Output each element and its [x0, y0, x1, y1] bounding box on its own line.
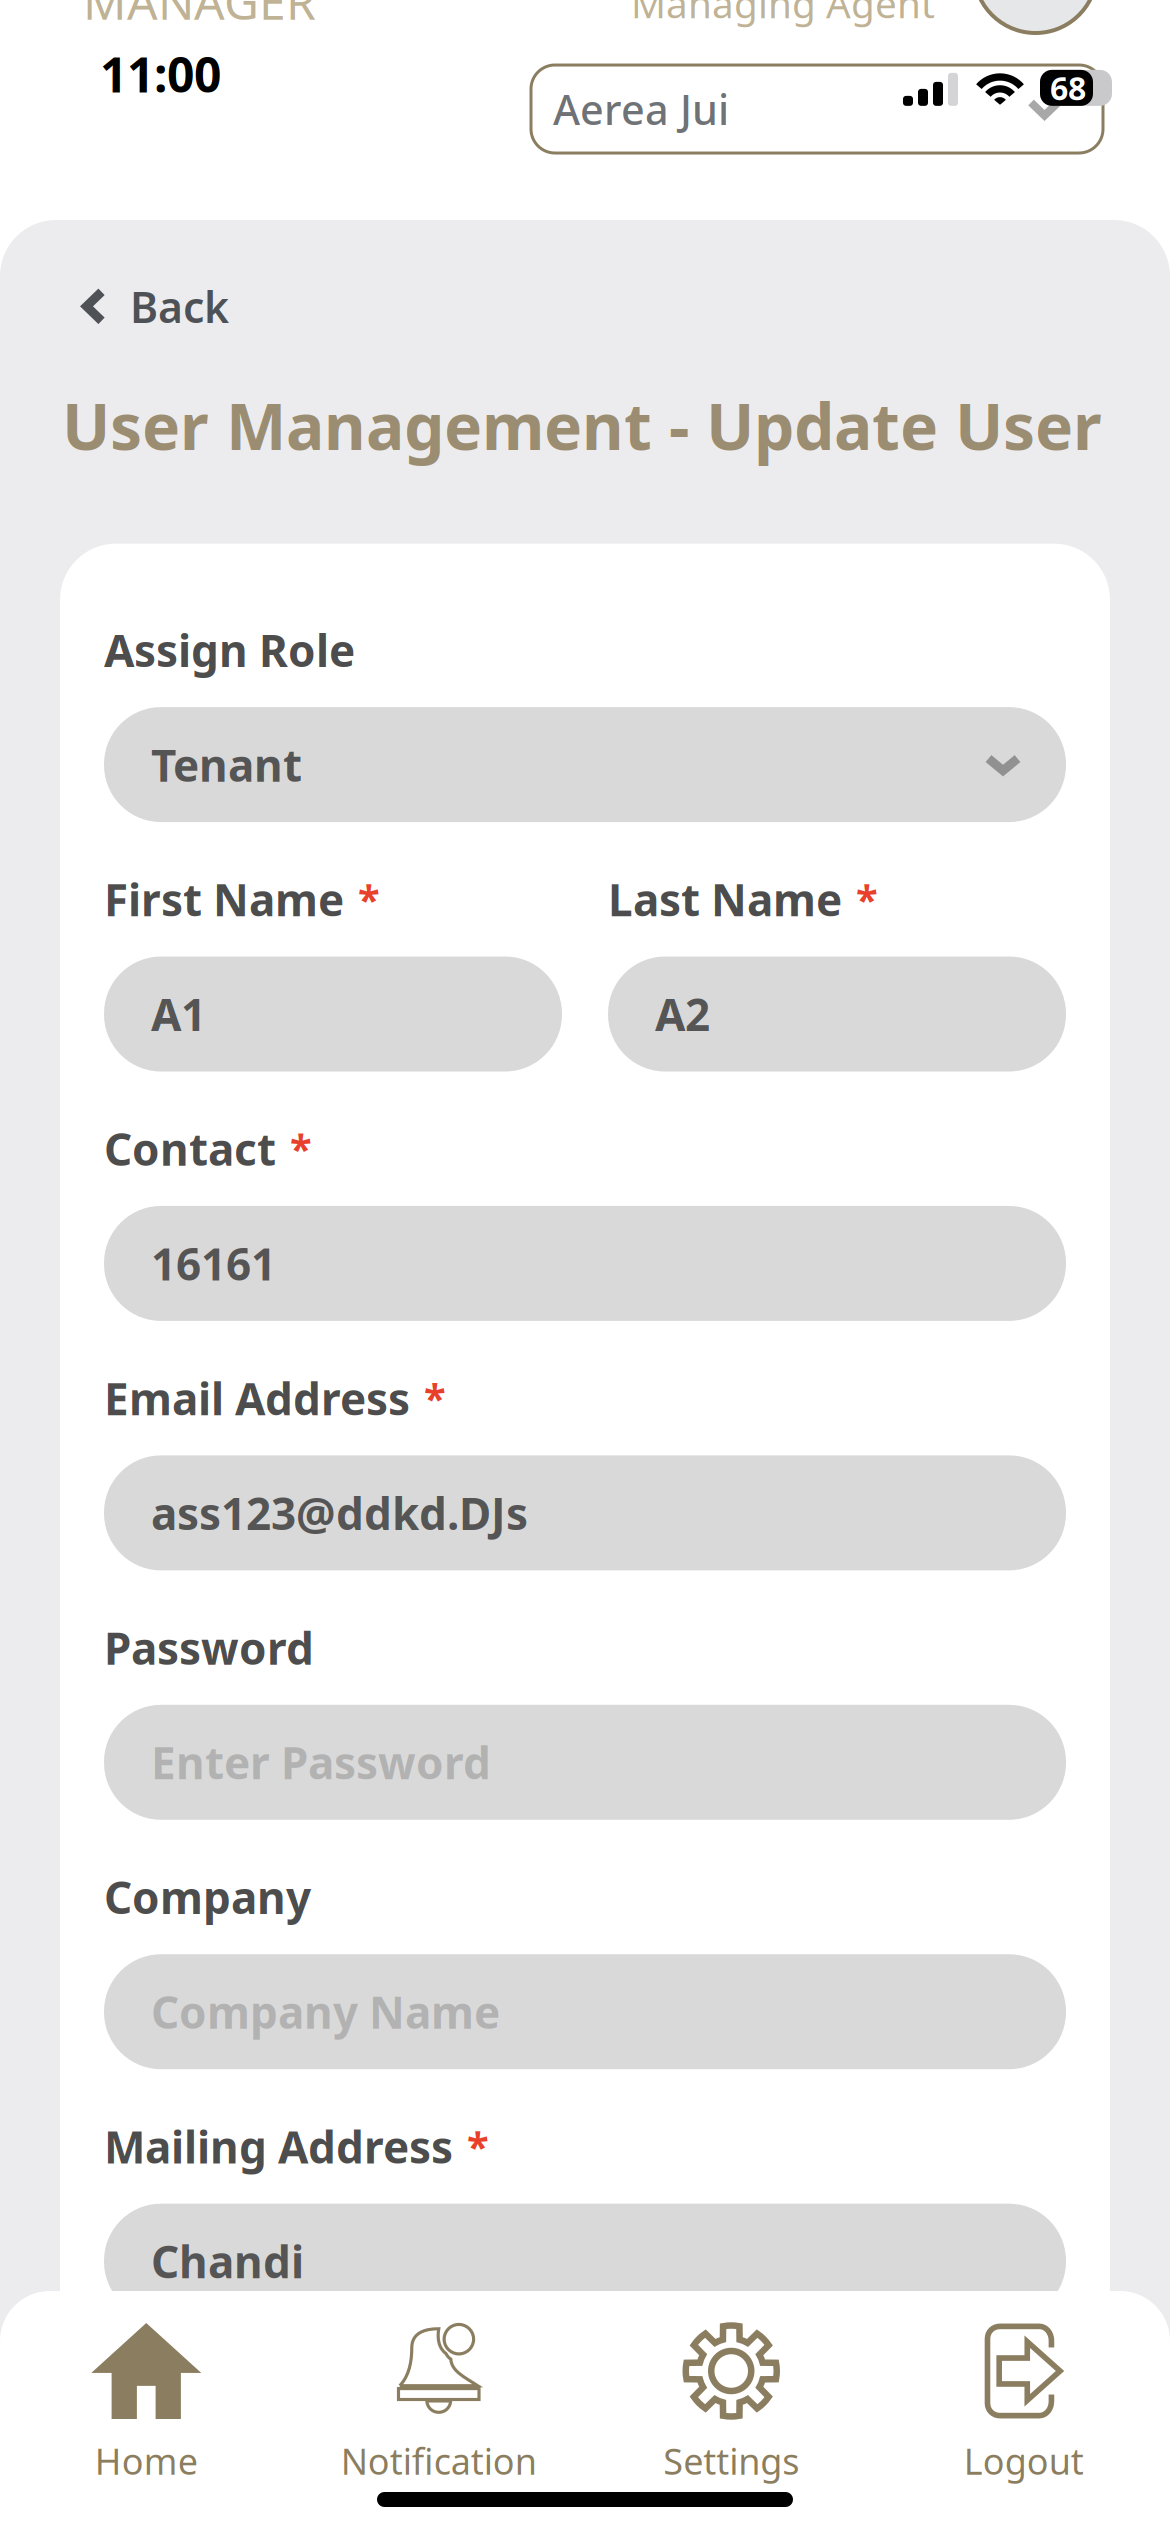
button[interactable]: Settings — [585, 2321, 877, 2485]
staticText: Back — [130, 278, 229, 335]
button[interactable]: Aerea Jui — [531, 65, 1103, 153]
staticText: Assign Role — [104, 621, 355, 679]
staticText: Enter Password — [151, 1733, 491, 1791]
button[interactable]: Home — [0, 2321, 292, 2485]
staticText: Chandi — [151, 2232, 304, 2290]
staticText: 11:00 — [100, 42, 221, 106]
button[interactable]: 16161 — [104, 1206, 1066, 1321]
staticText: Contact — [104, 1119, 276, 1178]
staticText: Notification — [341, 2437, 537, 2485]
staticText: MANAGER — [83, 0, 316, 33]
staticText: ass123@ddkd.DJs — [151, 1484, 528, 1542]
staticText: Settings — [663, 2437, 799, 2485]
staticText: Home — [95, 2437, 198, 2485]
button[interactable]: Company Name — [104, 1954, 1066, 2069]
staticText: First Name — [104, 870, 344, 928]
staticText: Managing Agent — [631, 0, 935, 29]
staticText: Mailing Address — [104, 2117, 453, 2176]
staticText: * — [467, 2119, 489, 2172]
staticText: * — [856, 872, 878, 925]
staticText: User Management - Update User — [62, 383, 1102, 468]
staticText: Password — [104, 1618, 314, 1677]
staticText: Company — [104, 1868, 311, 1926]
button[interactable]: A1 — [104, 956, 562, 1071]
staticText: A2 — [655, 985, 710, 1043]
button[interactable]: Tenant — [104, 707, 1066, 822]
staticText: * — [358, 872, 380, 925]
button[interactable]: Back — [0, 220, 229, 335]
staticText: A1 — [151, 985, 206, 1043]
button[interactable]: Enter Password — [104, 1705, 1066, 1820]
staticText: Last Name — [608, 870, 842, 928]
staticText: Email Address — [104, 1369, 410, 1427]
staticText: 68 — [1050, 67, 1086, 109]
button[interactable]: ass123@ddkd.DJs — [104, 1455, 1066, 1570]
staticText: 16161 — [151, 1234, 276, 1293]
button[interactable]: Notification — [292, 2321, 585, 2485]
button[interactable]: Logout — [877, 2321, 1170, 2485]
staticText: Company Name — [151, 1982, 500, 2041]
staticText: * — [290, 1121, 312, 1175]
staticText: Aerea Jui — [553, 82, 729, 136]
staticText: Tenant — [151, 735, 302, 794]
staticText: Logout — [964, 2437, 1084, 2485]
button[interactable]: A2 — [608, 956, 1066, 1071]
staticText: * — [424, 1371, 446, 1424]
button[interactable]: Chandi — [104, 2204, 1066, 2319]
